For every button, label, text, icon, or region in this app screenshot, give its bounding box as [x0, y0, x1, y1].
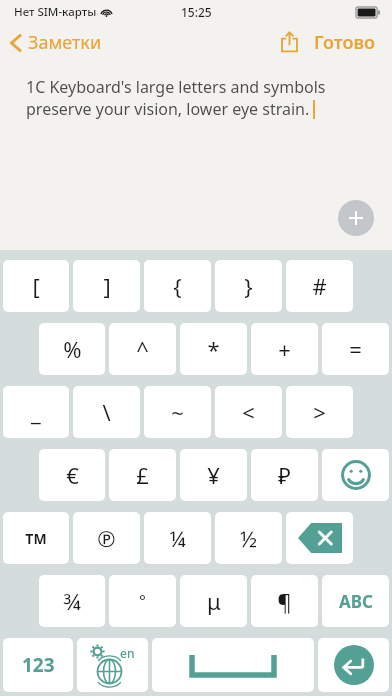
staticText: \ [102, 397, 111, 427]
staticText: 123 [22, 652, 55, 678]
staticText: ¥ [207, 460, 220, 490]
staticText: { [173, 271, 182, 301]
button[interactable]: ¾ [39, 575, 105, 627]
staticText: ₽ [278, 460, 291, 490]
staticText: ] [103, 271, 111, 301]
staticText: % [63, 334, 82, 364]
staticText: ° [139, 590, 146, 612]
staticText: Нет SIM-карты [14, 4, 97, 20]
button[interactable]: Заметки [0, 26, 112, 59]
button[interactable]: Space [152, 638, 314, 692]
staticText: ABC [339, 590, 373, 613]
button[interactable]: £ [109, 449, 176, 501]
button[interactable]: { [144, 260, 211, 312]
staticText: Готово [314, 30, 376, 54]
button[interactable]: Add [338, 200, 374, 236]
staticText: * [207, 334, 220, 364]
staticText: ¾ [63, 586, 81, 616]
staticText: 15:25 [181, 4, 212, 20]
button[interactable]: * [180, 323, 247, 375]
button[interactable]: ~ [144, 386, 211, 438]
button[interactable]: Delete [286, 512, 353, 564]
button[interactable]: ¼ [144, 512, 211, 564]
button[interactable]: 123 [3, 638, 73, 692]
staticText: ℗ [97, 523, 116, 553]
button[interactable]: Share [273, 24, 306, 60]
button[interactable]: \ [73, 386, 140, 438]
button[interactable]: TM [3, 512, 69, 564]
staticText: ¶ [277, 586, 292, 616]
button[interactable]: % [39, 323, 105, 375]
button[interactable]: ] [73, 260, 140, 312]
button[interactable]: Emoji [322, 449, 389, 501]
button[interactable]: Switch language [77, 638, 148, 692]
staticText: Заметки [28, 30, 102, 55]
staticText: > [313, 397, 326, 427]
staticText: preserve your vision, lower eye strain. [26, 98, 310, 120]
button[interactable]: ^ [109, 323, 176, 375]
button[interactable]: = [322, 323, 389, 375]
staticText: < [242, 397, 255, 427]
staticText: ~ [171, 397, 184, 427]
button[interactable]: € [39, 449, 105, 501]
button[interactable]: ₽ [251, 449, 318, 501]
staticText: ¼ [169, 523, 186, 553]
staticText: ^ [136, 334, 149, 364]
button[interactable]: Return [318, 638, 389, 692]
button[interactable]: Готово [306, 24, 384, 60]
button[interactable]: ° [109, 575, 176, 627]
staticText: + [278, 334, 291, 364]
button[interactable]: ABC [322, 575, 389, 627]
button[interactable]: [ [3, 260, 69, 312]
staticText: } [244, 271, 253, 301]
staticText: 1C Keyboard's large letters and symbols [26, 76, 326, 98]
staticText: ½ [240, 523, 257, 553]
button[interactable]: ¶ [251, 575, 318, 627]
button[interactable]: ½ [215, 512, 282, 564]
staticText: μ [207, 586, 221, 616]
button[interactable]: _ [3, 386, 69, 438]
staticText: = [349, 334, 362, 364]
button[interactable]: < [215, 386, 282, 438]
staticText: en [120, 645, 135, 661]
staticText: TM [25, 529, 47, 548]
button[interactable]: + [251, 323, 318, 375]
staticText: [ [32, 271, 40, 301]
staticText: € [66, 460, 79, 490]
button[interactable]: μ [180, 575, 247, 627]
button[interactable]: > [286, 386, 353, 438]
button[interactable]: ¥ [180, 449, 247, 501]
staticText: £ [136, 460, 149, 490]
button[interactable]: } [215, 260, 282, 312]
button[interactable]: # [286, 260, 353, 312]
staticText: # [312, 271, 327, 301]
staticText: _ [31, 397, 41, 427]
button[interactable]: ℗ [73, 512, 140, 564]
